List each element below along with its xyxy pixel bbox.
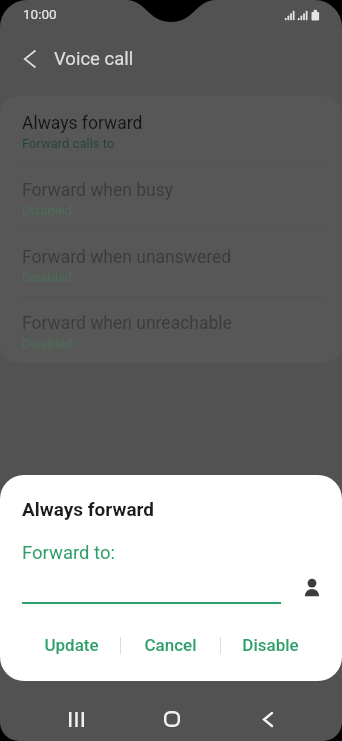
- staticText: Disabled: [22, 203, 73, 218]
- staticText: 10:00: [23, 6, 57, 22]
- staticText: Forward when unanswered: [22, 247, 232, 268]
- button[interactable]: Cancel: [121, 630, 220, 660]
- staticText: Always forward: [22, 113, 143, 134]
- staticText: Voice call: [54, 48, 134, 70]
- staticText: Forward calls to: [22, 136, 115, 151]
- button[interactable]: Back: [220, 697, 316, 741]
- button[interactable]: Update: [22, 630, 120, 660]
- button[interactable]: Forward when unreachable: [0, 296, 342, 363]
- staticText: Forward to:: [22, 542, 115, 564]
- staticText: Forward when unreachable: [22, 313, 232, 334]
- button[interactable]: Navigate up: [8, 37, 52, 81]
- button[interactable]: Forward when busy: [0, 163, 342, 230]
- staticText: Always forward: [22, 498, 155, 520]
- button[interactable]: Select contact: [296, 571, 328, 603]
- button[interactable]: Forward when unanswered: [0, 230, 342, 297]
- button[interactable]: Recent apps: [29, 697, 124, 741]
- staticText: Forward when busy: [22, 180, 174, 201]
- staticText: Update: [44, 635, 99, 655]
- staticText: Disable: [242, 635, 299, 655]
- button[interactable]: Always forward: [0, 96, 342, 163]
- button[interactable]: Disable: [221, 630, 320, 660]
- staticText: Disabled: [22, 336, 73, 351]
- button[interactable]: Home: [124, 697, 220, 741]
- staticText: Cancel: [144, 635, 197, 655]
- staticText: Disabled: [22, 270, 73, 285]
